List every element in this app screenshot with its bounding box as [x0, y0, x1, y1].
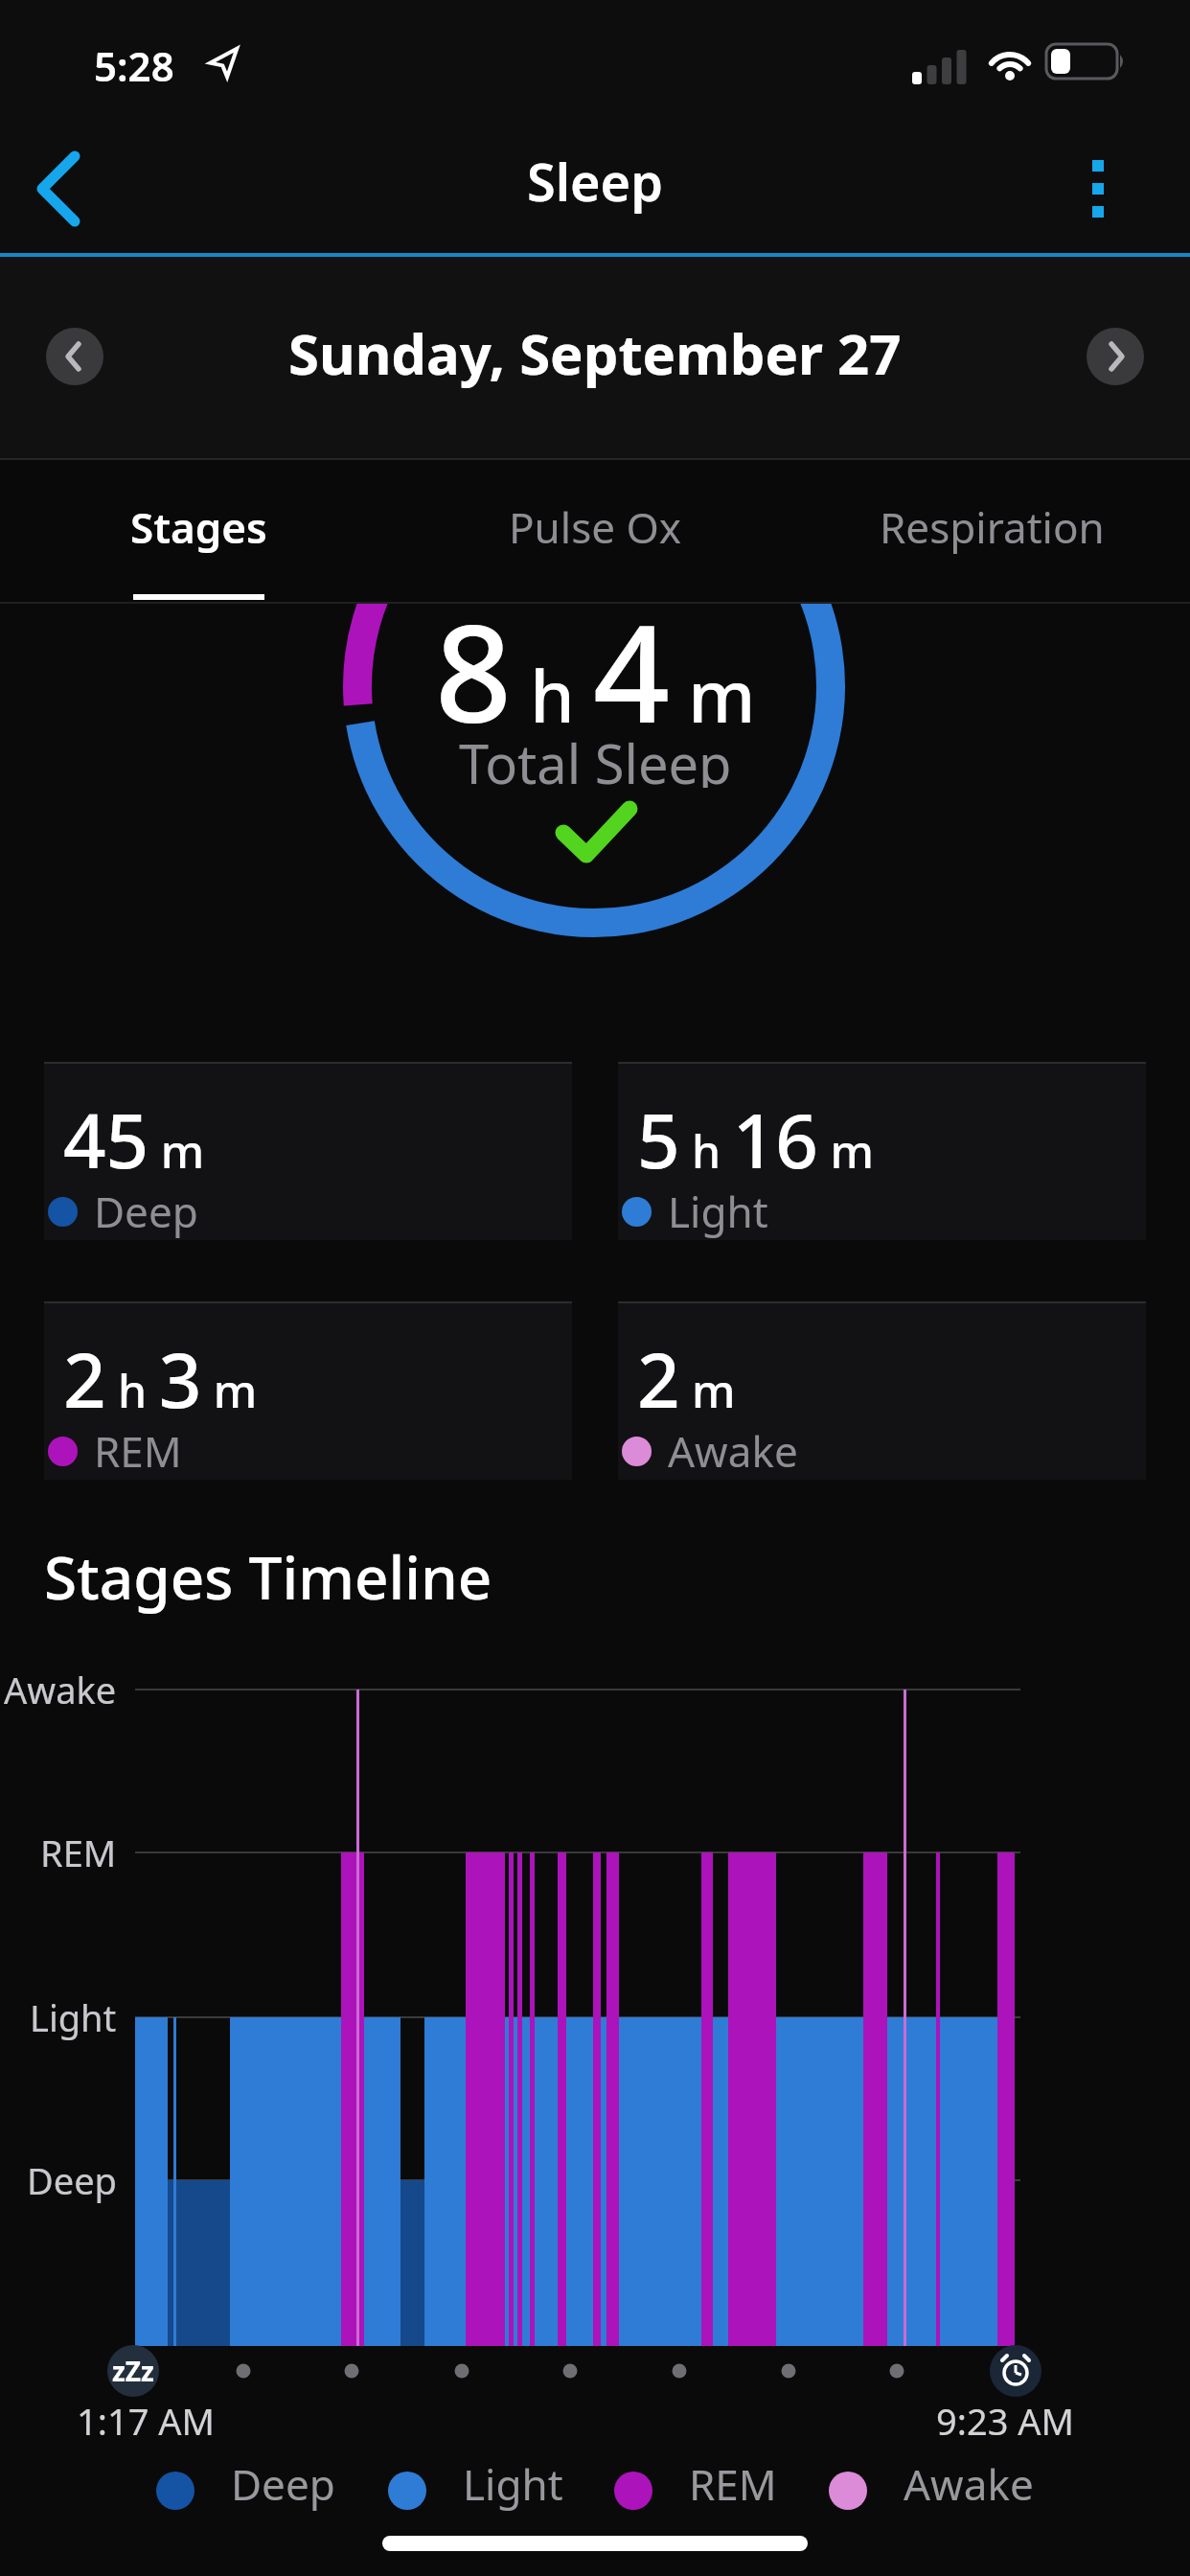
button[interactable]: Pulse Ox	[397, 470, 793, 585]
staticText: Awake	[904, 2455, 1034, 2513]
staticText: Deep	[27, 2155, 117, 2205]
staticText: 1:17 AM	[77, 2396, 216, 2446]
button[interactable]: 45 m	[44, 1062, 572, 1240]
button[interactable]: 5 h 16 m	[618, 1062, 1146, 1240]
staticText: Respiration	[880, 498, 1105, 556]
staticText: Awake	[4, 1665, 117, 1714]
button[interactable]	[1064, 144, 1133, 236]
staticText: Sunday, September 27	[288, 315, 902, 391]
staticText: REM	[94, 1422, 182, 1480]
button[interactable]	[990, 2345, 1041, 2397]
staticText: Stages	[130, 498, 267, 556]
staticText: Light	[668, 1183, 768, 1240]
staticText: Deep	[94, 1183, 198, 1240]
button[interactable]: Respiration	[793, 470, 1190, 585]
staticText: 9:23 AM	[936, 2396, 1075, 2446]
staticText: Pulse Ox	[509, 498, 682, 556]
button[interactable]	[19, 139, 105, 239]
button[interactable]	[1087, 328, 1144, 385]
staticText: Sleep	[527, 146, 663, 215]
staticText: Light	[30, 1992, 117, 2042]
button[interactable]	[46, 328, 103, 385]
button[interactable]: Stages	[0, 470, 397, 585]
staticText: Deep	[231, 2455, 335, 2513]
staticText: Total Sleep	[459, 726, 732, 788]
staticText: 5:28	[94, 38, 174, 92]
staticText: Light	[463, 2455, 563, 2513]
staticText: 8 h 4 m	[435, 579, 756, 762]
staticText: zZz	[112, 2353, 154, 2389]
staticText: Stages Timeline	[44, 1536, 492, 1617]
staticText: REM	[689, 2455, 777, 2513]
staticText: 2 h 3 m	[63, 1328, 258, 1430]
staticText: REM	[40, 1828, 117, 1877]
staticText: 5 h 16 m	[637, 1089, 874, 1190]
button[interactable]: zZz	[107, 2345, 159, 2397]
staticText: 2 m	[637, 1328, 736, 1430]
staticText: 45 m	[63, 1089, 205, 1190]
button[interactable]: 2 h 3 m	[44, 1301, 572, 1480]
staticText: Awake	[668, 1422, 798, 1480]
button[interactable]: 2 m	[618, 1301, 1146, 1480]
